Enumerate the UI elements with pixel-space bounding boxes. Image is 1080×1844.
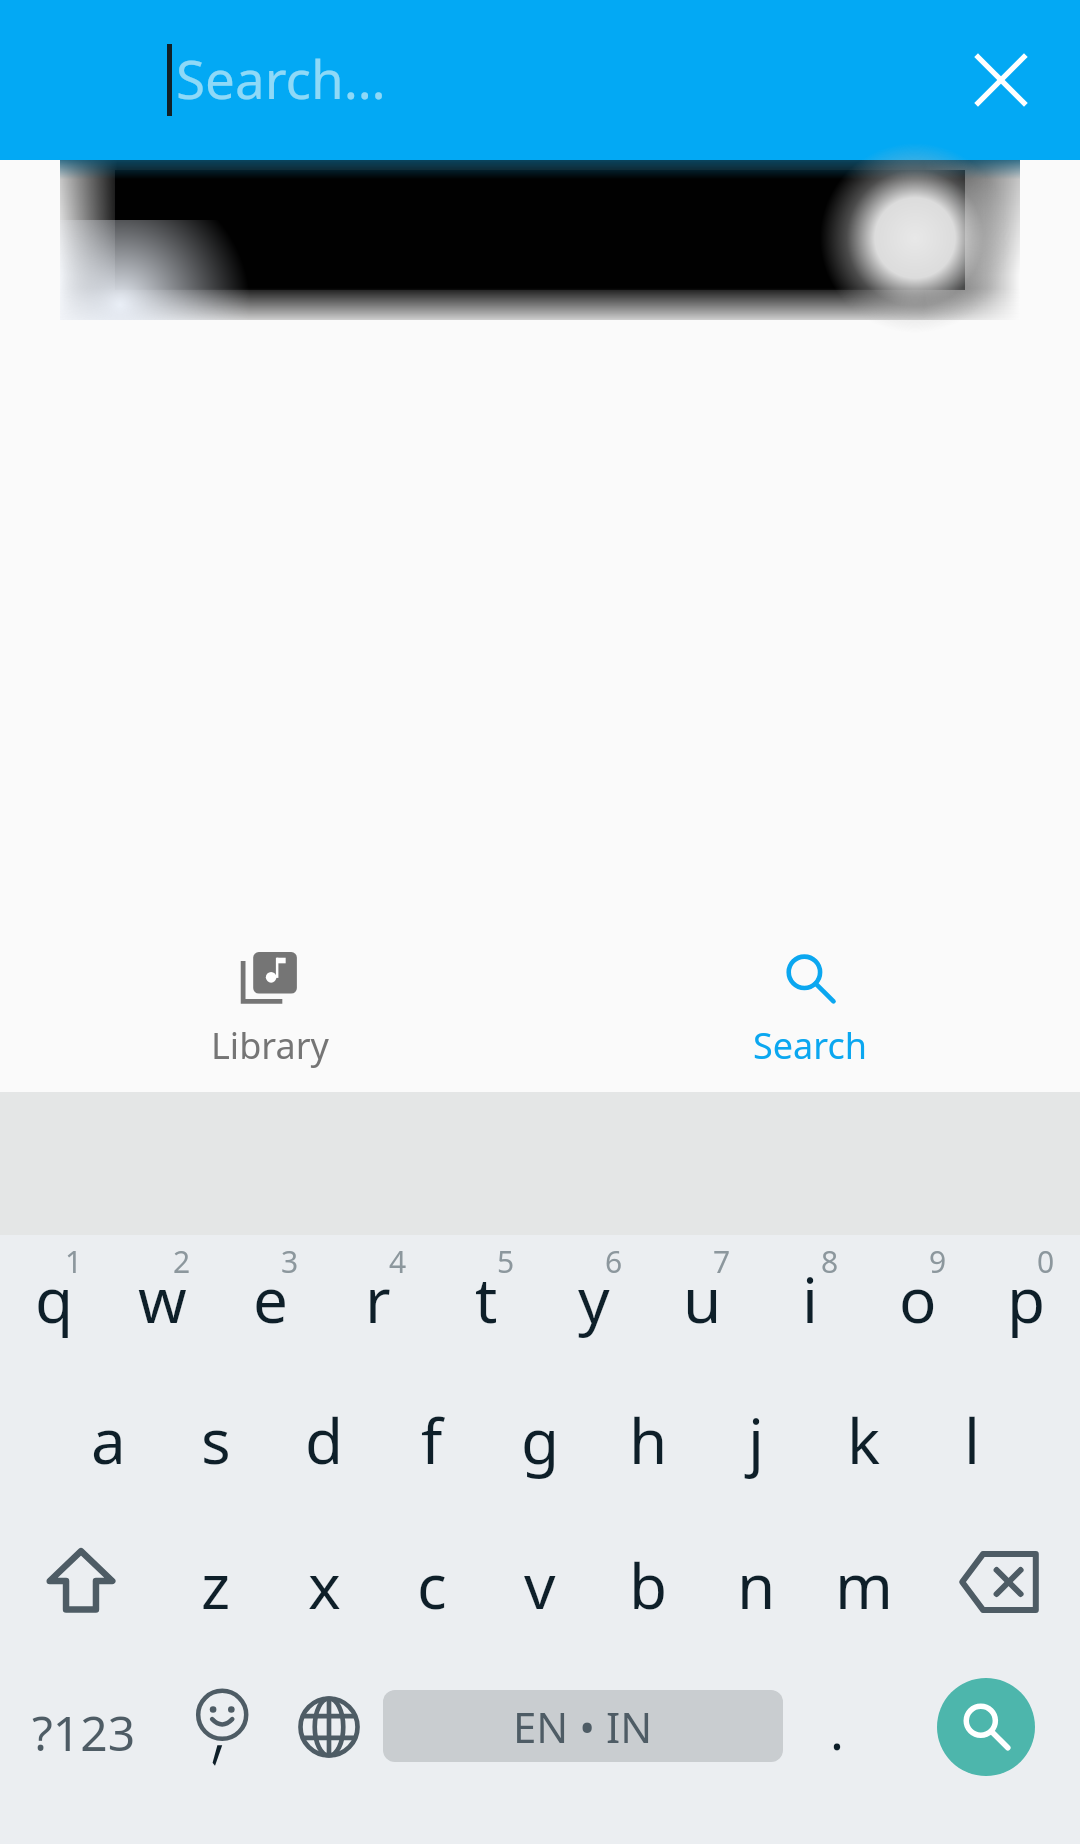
staticText: 6 <box>605 1241 623 1282</box>
staticText: w <box>138 1257 187 1341</box>
staticText: d <box>305 1398 344 1482</box>
button[interactable]: g <box>486 1380 594 1525</box>
button[interactable]: Search <box>540 928 1080 1092</box>
staticText: 9 <box>929 1241 947 1282</box>
staticText: q <box>35 1257 74 1341</box>
button[interactable]: Backspace <box>918 1525 1080 1670</box>
button[interactable]: 3 <box>216 1235 324 1380</box>
staticText: k <box>847 1398 881 1482</box>
button[interactable]: . <box>783 1670 891 1844</box>
button[interactable]: c <box>378 1525 486 1670</box>
button[interactable]: l <box>918 1380 1026 1525</box>
staticText: z <box>201 1543 231 1627</box>
button[interactable]: 7 <box>648 1235 756 1380</box>
staticText: e <box>253 1257 288 1341</box>
button[interactable]: ?123 <box>0 1670 167 1844</box>
staticText: c <box>417 1543 447 1627</box>
staticText: 0 <box>1037 1241 1055 1282</box>
button[interactable]: 2 <box>108 1235 216 1380</box>
staticText: Search… <box>176 42 386 114</box>
staticText: l <box>964 1398 980 1482</box>
staticText: s <box>201 1398 231 1482</box>
staticText: x <box>308 1543 341 1627</box>
button[interactable]: a <box>54 1380 162 1525</box>
staticText: p <box>1007 1257 1046 1341</box>
staticText: j <box>748 1398 764 1482</box>
button[interactable]: 8 <box>756 1235 864 1380</box>
staticText: 3 <box>281 1241 299 1282</box>
staticText: 2 <box>173 1241 191 1282</box>
button[interactable]: Search <box>891 1670 1080 1844</box>
button[interactable]: f <box>378 1380 486 1525</box>
staticText: f <box>421 1398 443 1482</box>
button[interactable]: z <box>162 1525 270 1670</box>
button[interactable]: b <box>594 1525 702 1670</box>
staticText: m <box>835 1543 893 1627</box>
staticText: r <box>365 1257 391 1341</box>
button[interactable]: 4 <box>324 1235 432 1380</box>
staticText: n <box>737 1543 776 1627</box>
button[interactable]: Close search <box>946 25 1056 135</box>
button[interactable]: x <box>270 1525 378 1670</box>
button[interactable]: Library <box>0 928 540 1092</box>
staticText: 8 <box>821 1241 839 1282</box>
staticText: Search <box>753 1021 867 1070</box>
button[interactable]: 0 <box>972 1235 1080 1380</box>
button[interactable]: m <box>810 1525 918 1670</box>
staticText: Library <box>211 1021 329 1070</box>
button[interactable]: n <box>702 1525 810 1670</box>
button[interactable]: 1 <box>0 1235 108 1380</box>
staticText: b <box>629 1543 668 1627</box>
button[interactable]: s <box>162 1380 270 1525</box>
staticText: g <box>521 1398 560 1482</box>
staticText: t <box>475 1257 498 1341</box>
button[interactable]: j <box>702 1380 810 1525</box>
staticText: y <box>578 1257 610 1341</box>
staticText: u <box>683 1257 722 1341</box>
staticText: i <box>802 1257 818 1341</box>
staticText: 5 <box>497 1241 515 1282</box>
staticText: 1 <box>65 1241 83 1282</box>
button[interactable]: 5 <box>432 1235 540 1380</box>
staticText: o <box>899 1257 937 1341</box>
staticText: . <box>830 1694 844 1765</box>
button[interactable]: Shift <box>0 1525 162 1670</box>
button[interactable]: v <box>486 1525 594 1670</box>
staticText: 7 <box>713 1241 731 1282</box>
button[interactable]: EN • IN <box>383 1670 783 1844</box>
button[interactable]: h <box>594 1380 702 1525</box>
staticText: 4 <box>389 1241 407 1282</box>
staticText: v <box>524 1543 556 1627</box>
staticText: EN • IN <box>513 1698 653 1755</box>
button[interactable]: d <box>270 1380 378 1525</box>
button[interactable]: Change language <box>275 1670 383 1844</box>
button[interactable]: 9 <box>864 1235 972 1380</box>
staticText: a <box>91 1398 126 1482</box>
button[interactable]: k <box>810 1380 918 1525</box>
staticText: h <box>629 1398 668 1482</box>
button[interactable]: 6 <box>540 1235 648 1380</box>
staticText: ?123 <box>32 1700 136 1765</box>
button[interactable]: Emoji and comma <box>167 1670 275 1844</box>
